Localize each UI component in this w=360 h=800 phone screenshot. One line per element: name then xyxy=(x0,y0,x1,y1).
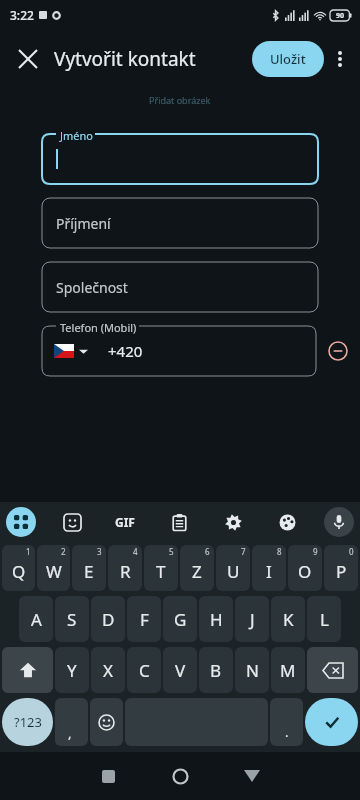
staticText: Uložit xyxy=(270,50,306,68)
staticText: G xyxy=(174,608,187,631)
button[interactable]: H xyxy=(199,596,233,642)
button[interactable]: 5 xyxy=(144,545,178,591)
staticText: M xyxy=(280,659,296,682)
staticText: 90 xyxy=(336,11,345,21)
staticText: Q xyxy=(12,560,26,583)
staticText: 3 xyxy=(97,546,102,557)
button[interactable]: 4 xyxy=(108,545,142,591)
button[interactable]: 3 xyxy=(72,545,106,591)
button[interactable]: Back xyxy=(216,752,288,800)
button[interactable]: Společnost xyxy=(42,262,318,312)
button[interactable]: N xyxy=(235,647,269,693)
staticText: 7 xyxy=(241,546,246,557)
button[interactable]: K xyxy=(271,596,305,642)
staticText: A xyxy=(31,608,42,631)
staticText: , xyxy=(68,724,72,742)
button[interactable]: Jméno xyxy=(42,134,318,184)
button[interactable]: Telefon (Mobil) xyxy=(42,326,316,376)
button[interactable]: Y xyxy=(55,647,89,693)
staticText: D xyxy=(102,608,115,631)
staticText: Y xyxy=(67,659,77,682)
staticText: E xyxy=(84,560,94,583)
staticText: Z xyxy=(192,560,202,583)
button[interactable]: D xyxy=(91,596,125,642)
button[interactable]: Clipboard xyxy=(162,505,196,539)
staticText: O xyxy=(298,560,312,583)
staticText: N xyxy=(246,659,259,682)
staticText: U xyxy=(227,560,240,583)
button[interactable]: Home xyxy=(144,752,216,800)
button[interactable]: 2 xyxy=(37,545,70,591)
staticText: V xyxy=(175,659,186,682)
button[interactable]: Backspace xyxy=(307,647,358,693)
staticText: 5 xyxy=(169,546,174,557)
button[interactable]: Shift xyxy=(2,647,53,693)
button[interactable]: G xyxy=(163,596,197,642)
button[interactable]: , xyxy=(55,698,88,746)
staticText: P xyxy=(336,560,347,583)
staticText: J xyxy=(250,608,255,631)
button[interactable]: A xyxy=(19,596,53,642)
button[interactable]: Close xyxy=(6,37,50,81)
staticText: 8 xyxy=(277,546,282,557)
staticText: GIF xyxy=(115,514,135,530)
button[interactable]: V xyxy=(163,647,197,693)
staticText: Společnost xyxy=(56,278,128,297)
staticText: X xyxy=(103,659,113,682)
staticText: L xyxy=(320,608,329,631)
staticText: 0 xyxy=(349,546,354,557)
button[interactable]: Voice input xyxy=(324,507,354,537)
staticText: 2 xyxy=(61,546,66,557)
button[interactable]: Stickers xyxy=(55,505,89,539)
staticText: 3:22 xyxy=(10,7,34,23)
staticText: Příjmení xyxy=(56,214,111,233)
staticText: . xyxy=(285,723,289,741)
button[interactable]: M xyxy=(271,647,305,693)
staticText: 1 xyxy=(26,546,31,557)
staticText: +420 xyxy=(108,341,143,361)
button[interactable]: F xyxy=(127,596,161,642)
staticText: C xyxy=(139,659,150,682)
button[interactable]: 1 xyxy=(2,545,35,591)
button[interactable]: ?123 xyxy=(2,698,53,746)
button[interactable]: 6 xyxy=(180,545,214,591)
staticText: B xyxy=(210,659,222,682)
button[interactable]: Uložit xyxy=(252,41,324,77)
button[interactable]: Emoji xyxy=(90,698,123,746)
button[interactable]: J xyxy=(235,596,269,642)
button[interactable]: 8 xyxy=(252,545,286,591)
staticText: Vytvořit kontakt xyxy=(54,46,196,72)
button[interactable]: Settings xyxy=(216,505,250,539)
staticText: ?123 xyxy=(14,713,42,731)
button[interactable]: X xyxy=(91,647,125,693)
button[interactable]: GIF xyxy=(108,505,142,539)
button[interactable]: Remove phone xyxy=(316,326,360,376)
staticText: T xyxy=(156,560,166,583)
button[interactable]: Done xyxy=(305,698,358,746)
button[interactable]: 7 xyxy=(216,545,250,591)
staticText: Jméno xyxy=(60,128,93,143)
button[interactable]: Recents xyxy=(72,752,144,800)
button[interactable]: Keyboard options xyxy=(6,507,36,537)
button[interactable]: S xyxy=(55,596,89,642)
button[interactable]: B xyxy=(199,647,233,693)
staticText: 4 xyxy=(133,546,138,557)
staticText: K xyxy=(283,608,294,631)
button[interactable]: L xyxy=(307,596,341,642)
staticText: 6 xyxy=(205,546,210,557)
button[interactable]: Příjmení xyxy=(42,198,318,248)
staticText: R xyxy=(120,560,131,583)
staticText: Přidat obrázek xyxy=(149,94,211,106)
button[interactable]: C xyxy=(127,647,161,693)
staticText: W xyxy=(46,560,62,583)
button[interactable]: 9 xyxy=(288,545,322,591)
staticText: Telefon (Mobil) xyxy=(60,320,137,335)
staticText: I xyxy=(266,560,272,583)
button[interactable]: . xyxy=(270,698,303,746)
staticText: H xyxy=(210,608,223,631)
button[interactable]: More options xyxy=(322,41,358,77)
button[interactable]: 0 xyxy=(324,545,358,591)
staticText: S xyxy=(67,608,77,631)
button[interactable]: Themes xyxy=(270,505,304,539)
